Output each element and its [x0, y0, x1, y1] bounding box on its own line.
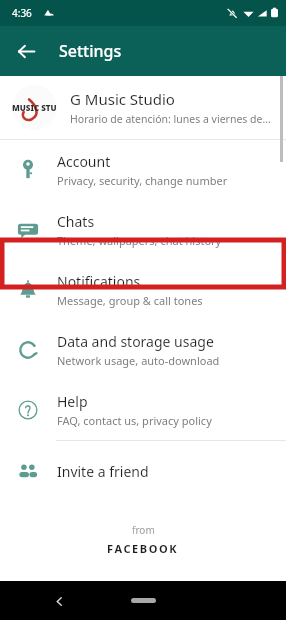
staticText: FACEBOOK [107, 541, 179, 556]
staticText: Chats [57, 212, 95, 231]
staticText: Account [57, 152, 111, 171]
staticText: Help [57, 392, 88, 411]
button[interactable]: Chats [0, 200, 286, 260]
staticText: FAQ, contact us, privacy policy [57, 413, 212, 428]
staticText: Theme, wallpapers, chat history [57, 233, 222, 248]
button[interactable]: Home [131, 598, 156, 603]
staticText: 4:36 [12, 6, 32, 20]
staticText: G Music Studio [70, 89, 175, 109]
staticText: from [132, 523, 155, 537]
staticText: Settings [59, 40, 122, 62]
staticText: Privacy, security, change number [57, 173, 228, 188]
button[interactable]: Back [44, 586, 74, 616]
staticText: Data and storage usage [57, 332, 214, 351]
button[interactable]: Notifications [0, 260, 286, 320]
staticText: Notifications [57, 272, 141, 291]
staticText: Message, group & call tones [57, 293, 203, 308]
button[interactable]: Invite a friend [0, 441, 286, 501]
button[interactable]: MUSIC STUDIO [0, 76, 286, 139]
staticText: MUSIC STUDIO [12, 102, 57, 113]
staticText: Network usage, auto-download [57, 353, 220, 368]
button[interactable]: Data and storage usage [0, 320, 286, 380]
button[interactable]: Back [10, 35, 42, 67]
button[interactable]: Account [0, 140, 286, 200]
staticText: Horario de atención: lunes a viernes de… [70, 112, 271, 126]
staticText: Invite a friend [57, 462, 149, 481]
button[interactable]: Help [0, 380, 286, 440]
